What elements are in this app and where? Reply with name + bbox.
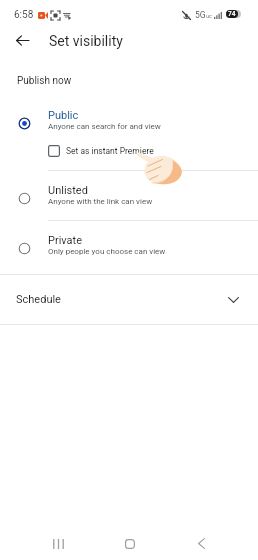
staticText: Only people you choose can view	[48, 247, 166, 256]
staticText: Anyone with the link can view	[48, 197, 153, 206]
staticText: Public	[48, 109, 79, 122]
button[interactable]: Navigate up	[6, 24, 38, 56]
staticText: 6:58	[14, 9, 34, 21]
staticText: 5G	[195, 10, 206, 20]
button[interactable]: Home	[112, 527, 148, 560]
staticText: Publish now	[17, 75, 72, 87]
button[interactable]: Recent apps	[40, 527, 76, 560]
button[interactable]: Back	[183, 527, 219, 560]
staticText: Unlisted	[48, 184, 88, 197]
staticText: Set as instant Premiere	[66, 146, 154, 156]
button[interactable]: Set as instant Premiere	[48, 139, 258, 163]
staticText: Schedule	[16, 293, 61, 306]
staticText: Anyone can search for and view	[48, 122, 161, 131]
staticText: Set visibility	[49, 33, 123, 49]
staticText: 74	[228, 10, 236, 18]
button[interactable]: Unlisted	[0, 176, 258, 214]
staticText: Private	[48, 234, 83, 247]
button[interactable]: Private	[0, 226, 258, 264]
button[interactable]: Public	[0, 101, 258, 139]
button[interactable]: Schedule	[0, 275, 258, 324]
staticText: uc	[206, 13, 212, 19]
